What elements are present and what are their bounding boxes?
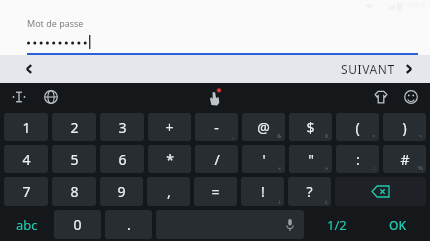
staticText: ) [402,118,407,137]
staticText: , [167,182,171,201]
button[interactable]: , [147,177,190,206]
button[interactable]: Retour arrière [335,177,426,206]
staticText: & [277,132,282,140]
staticText: SUIVANT [341,61,395,77]
button[interactable]: Thèmes [368,84,394,110]
button[interactable]: Emoji [398,84,424,110]
staticText: ' [262,150,266,169]
button[interactable]: 3 [100,113,144,141]
button[interactable]: 9 [100,177,143,206]
staticText: ¡ [279,197,281,205]
staticText: 7 [22,182,31,201]
staticText: > [419,132,423,140]
staticText: 0 [73,215,82,234]
staticText: ? [306,182,313,201]
staticText: / [214,150,220,169]
staticText: " [308,150,314,169]
button[interactable]: @ [242,113,285,141]
button[interactable]: ' [242,145,285,173]
staticText: @ [257,118,270,137]
button[interactable]: 7 [4,177,48,206]
staticText: $ [306,118,315,137]
button[interactable]: Presse-papiers [201,83,229,111]
button[interactable]: 4 [4,145,48,173]
button[interactable]: 2 [52,113,96,141]
button[interactable]: OK [369,210,426,239]
button[interactable]: ! [241,177,284,206]
staticText: - [214,118,219,137]
button[interactable]: ( [336,113,379,141]
staticText: _ [232,132,235,140]
staticText: ! [261,182,265,201]
button[interactable]: . [105,210,152,239]
staticText: 4 [22,150,31,169]
button[interactable]: 1 [4,113,48,141]
staticText: 8 [70,182,79,201]
staticText: € [325,132,329,140]
staticText: * [166,150,174,169]
button[interactable]: * [148,145,191,173]
button[interactable]: + [148,113,191,141]
staticText: ¿ [325,197,328,205]
button[interactable]: Changer de langue [38,84,64,110]
button[interactable]: ) [383,113,426,141]
button[interactable]: SUIVANT [337,58,418,80]
staticText: % [418,164,423,172]
staticText: = [211,182,220,201]
staticText: 1/2 [327,216,347,234]
button[interactable]: $ [289,113,332,141]
button[interactable]: = [194,177,237,206]
staticText: OK [389,217,406,233]
staticText: 1 [22,118,31,137]
staticText: 2 [70,118,79,137]
button[interactable]: - [195,113,238,141]
staticText: 5 [70,150,79,169]
button[interactable]: 1/2 [308,210,365,239]
staticText: + [165,118,174,137]
staticText: ; [374,164,376,172]
staticText: » [325,164,329,172]
staticText: « [278,164,282,172]
staticText: Mot de passe [27,17,84,29]
button[interactable]: # [383,145,426,173]
button[interactable]: " [289,145,332,173]
button[interactable]: ? [288,177,331,206]
button[interactable]: : [336,145,379,173]
staticText: # [400,150,410,169]
button[interactable]: Espace [156,210,304,239]
button[interactable]: 0 [54,210,101,239]
button[interactable]: 5 [52,145,96,173]
staticText: < [372,132,376,140]
button[interactable]: 6 [100,145,144,173]
staticText: : [356,150,360,169]
staticText: . [127,215,131,234]
staticText: abc [16,216,38,234]
staticText: 3 [118,118,127,137]
staticText: 9 [117,182,126,201]
staticText: 6 [118,150,127,169]
button[interactable]: Déplacer le curseur [6,84,32,110]
button[interactable]: Précédent [18,58,40,80]
staticText: ( [355,118,360,137]
button[interactable]: / [195,145,238,173]
button[interactable]: abc [4,210,50,239]
button[interactable]: 8 [52,177,96,206]
